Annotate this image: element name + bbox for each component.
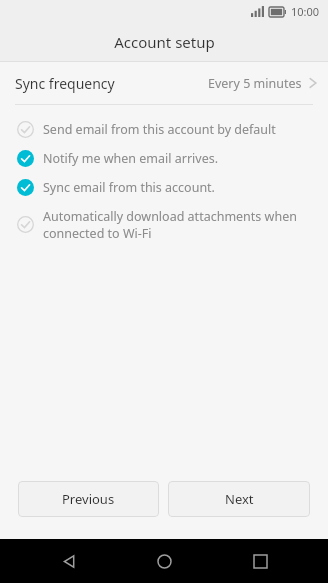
staticText: Account setup	[114, 32, 215, 52]
button[interactable]: Recent apps	[233, 539, 287, 583]
button[interactable]: Sync frequency	[0, 62, 328, 105]
staticText: 10:00	[291, 4, 320, 19]
button[interactable]: Previous	[18, 481, 159, 517]
button[interactable]: Sync email from this account.	[0, 173, 328, 202]
staticText: Sync email from this account.	[43, 179, 215, 196]
staticText: Next	[225, 490, 254, 508]
button[interactable]: Notify me when email arrives.	[0, 144, 328, 173]
button[interactable]: Send email from this account by default	[0, 115, 328, 144]
staticText: Sync frequency	[15, 74, 115, 93]
button[interactable]: Home	[137, 539, 191, 583]
button[interactable]: Next	[168, 481, 310, 517]
staticText: Automatically download attachments when …	[43, 208, 312, 241]
staticText: Notify me when email arrives.	[43, 150, 219, 167]
staticText: Send email from this account by default	[43, 121, 276, 138]
button[interactable]: Back	[42, 539, 96, 583]
staticText: Every 5 minutes	[208, 75, 302, 92]
staticText: Previous	[62, 490, 115, 508]
button[interactable]: Automatically download attachments when …	[0, 202, 328, 247]
